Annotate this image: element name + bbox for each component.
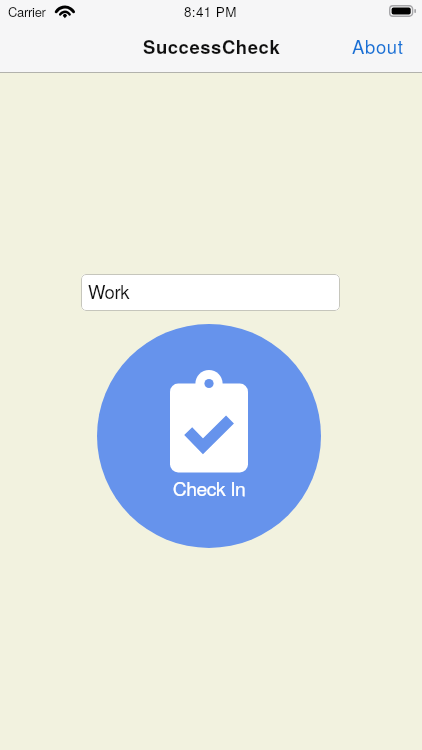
button[interactable]: Check In: [97, 324, 321, 548]
staticText: About: [352, 33, 404, 59]
other: Battery full: [389, 5, 416, 17]
button[interactable]: Work: [81, 274, 340, 311]
staticText: Check In: [97, 474, 321, 502]
button[interactable]: About: [338, 19, 418, 73]
staticText: SuccessCheck: [143, 33, 281, 59]
staticText: Carrier: [8, 2, 46, 21]
staticText: 8:41 PM: [184, 2, 237, 21]
other: Wi-Fi signal: [56, 5, 74, 18]
staticText: Work: [88, 278, 130, 304]
